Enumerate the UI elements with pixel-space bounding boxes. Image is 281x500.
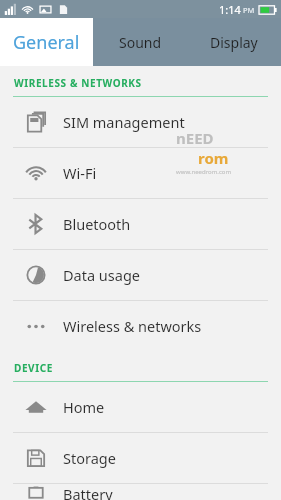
staticText: nEED [176, 128, 214, 148]
button[interactable]: Home [0, 382, 281, 432]
staticText: Wi-Fi [63, 163, 97, 183]
staticText: rom [198, 148, 229, 168]
button[interactable]: Sound [93, 18, 187, 66]
button[interactable]: Battery [0, 484, 281, 500]
button[interactable]: Display [187, 18, 281, 66]
staticText: Home [63, 397, 105, 417]
staticText: Bluetooth [63, 214, 131, 234]
staticText: PM [243, 5, 255, 15]
staticText: SIM management [63, 112, 185, 132]
staticText: Storage [63, 448, 116, 468]
staticText: Data usage [63, 265, 140, 285]
staticText: 1:14 [219, 2, 241, 17]
staticText: Battery [63, 484, 113, 500]
staticText: www.needrom.com [176, 168, 232, 176]
staticText: Display [210, 33, 258, 52]
button[interactable]: Storage [0, 433, 281, 483]
button[interactable]: Data usage [0, 250, 281, 300]
button[interactable]: General [0, 18, 93, 66]
button[interactable]: SIM management [0, 97, 281, 147]
staticText: Wireless & networks [63, 316, 202, 336]
staticText: DEVICE [14, 361, 53, 375]
staticText: WIRELESS & NETWORKS [14, 76, 142, 90]
staticText: General [13, 30, 80, 55]
button[interactable]: Bluetooth [0, 199, 281, 249]
button[interactable]: Wi-Fi [0, 148, 281, 198]
button[interactable]: Wireless & networks [0, 301, 281, 351]
staticText: Sound [119, 33, 162, 52]
